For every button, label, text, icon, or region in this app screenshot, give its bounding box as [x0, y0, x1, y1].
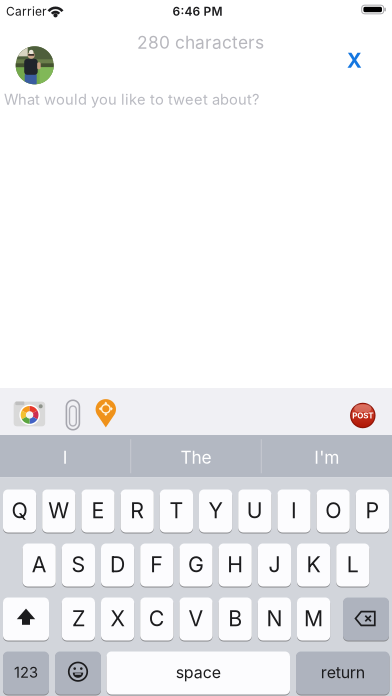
staticText: A [32, 552, 47, 577]
staticText: P [365, 498, 379, 523]
staticText: What would you like to tweet about? [4, 91, 259, 108]
staticText: Y [209, 498, 223, 523]
staticText: C [149, 606, 165, 631]
staticText: 280 characters [137, 32, 264, 53]
staticText: The [180, 447, 211, 468]
staticText: K [307, 552, 321, 577]
staticText: X [347, 49, 362, 72]
staticText: R [130, 498, 144, 523]
staticText: D [110, 552, 125, 577]
staticText: I'm [314, 447, 339, 468]
staticText: N [266, 606, 282, 631]
staticText: E [91, 498, 104, 523]
staticText: J [268, 552, 280, 577]
staticText: B [228, 606, 242, 631]
staticText: space [176, 663, 221, 682]
staticText: 6:46 PM [172, 4, 222, 19]
staticText: F [150, 552, 163, 577]
staticText: V [188, 606, 203, 631]
staticText: Carrier [6, 4, 47, 19]
staticText: U [247, 498, 263, 523]
staticText: I [63, 447, 68, 468]
staticText: I [291, 498, 297, 523]
staticText: T [169, 498, 183, 523]
staticText: 123 [14, 664, 38, 681]
staticText: G [188, 552, 204, 577]
staticText: POST [352, 411, 373, 420]
staticText: W [48, 498, 69, 523]
staticText: L [347, 552, 359, 577]
staticText: S [71, 552, 85, 577]
staticText: return [321, 663, 365, 682]
staticText: M [304, 606, 323, 631]
staticText: Q [12, 498, 28, 523]
staticText: Z [72, 606, 85, 631]
staticText: X [111, 606, 125, 631]
staticText: H [227, 552, 243, 577]
staticText: O [325, 498, 341, 523]
